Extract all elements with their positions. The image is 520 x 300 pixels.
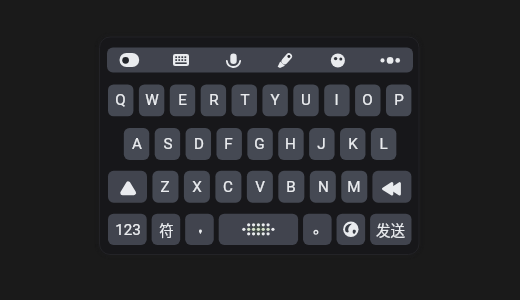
staticText: D — [194, 135, 204, 153]
staticText: G — [254, 135, 265, 153]
button[interactable] — [278, 128, 303, 160]
staticText: N — [318, 178, 329, 196]
button[interactable] — [310, 171, 336, 203]
staticText: V — [255, 178, 265, 196]
staticText: 123 — [115, 221, 141, 239]
staticText: P — [394, 91, 404, 109]
button[interactable] — [108, 214, 147, 245]
button[interactable]: Backspace — [372, 171, 411, 203]
button[interactable] — [216, 128, 241, 160]
button[interactable] — [340, 128, 365, 160]
staticText: H — [285, 135, 296, 153]
staticText: 发送 — [376, 219, 405, 240]
button[interactable] — [215, 171, 241, 203]
button[interactable] — [139, 84, 164, 116]
button[interactable] — [247, 171, 273, 203]
button[interactable] — [201, 84, 226, 116]
staticText: S — [163, 135, 173, 153]
button[interactable]: Space — [219, 214, 298, 245]
staticText: L — [379, 135, 388, 153]
button[interactable] — [355, 84, 380, 116]
button[interactable] — [247, 128, 272, 160]
staticText: X — [192, 178, 202, 196]
staticText: Q — [115, 91, 126, 109]
staticText: T — [240, 91, 250, 109]
button[interactable] — [152, 171, 178, 203]
button[interactable]: Switch language — [337, 214, 366, 245]
button[interactable] — [309, 128, 334, 160]
staticText: J — [317, 135, 326, 153]
staticText: A — [132, 135, 142, 153]
button[interactable]: Voice input — [220, 48, 246, 73]
button[interactable]: Comma — [185, 214, 214, 245]
button[interactable]: Period — [303, 214, 332, 245]
button[interactable] — [155, 128, 180, 160]
button[interactable] — [184, 171, 210, 203]
staticText: B — [286, 178, 296, 196]
button[interactable]: More options — [376, 48, 404, 73]
button[interactable] — [278, 171, 304, 203]
staticText: K — [348, 135, 358, 153]
button[interactable] — [370, 214, 411, 245]
staticText: M — [347, 178, 361, 196]
staticText: C — [223, 178, 233, 196]
button[interactable] — [293, 84, 318, 116]
button[interactable] — [124, 128, 149, 160]
staticText: E — [178, 91, 187, 109]
staticText: W — [145, 91, 159, 109]
button[interactable]: Keyboard layout — [167, 48, 195, 73]
staticText: U — [301, 91, 311, 109]
button[interactable] — [371, 128, 396, 160]
staticText: F — [224, 135, 233, 153]
button[interactable]: Shift — [108, 171, 147, 203]
staticText: Y — [270, 91, 280, 109]
button[interactable] — [324, 84, 349, 116]
button[interactable]: Handwriting — [272, 48, 298, 73]
button[interactable] — [108, 84, 133, 116]
staticText: Z — [160, 178, 170, 196]
button[interactable] — [341, 171, 367, 203]
button[interactable]: Toggle keyboard — [114, 48, 145, 73]
button[interactable]: Emoji — [325, 48, 351, 73]
button[interactable] — [186, 128, 211, 160]
button[interactable] — [386, 84, 411, 116]
staticText: 符 — [159, 219, 174, 240]
staticText: O — [362, 91, 373, 109]
button[interactable] — [232, 84, 257, 116]
button[interactable] — [262, 84, 287, 116]
button[interactable] — [170, 84, 195, 116]
button[interactable] — [152, 214, 181, 245]
staticText: I — [334, 91, 339, 109]
staticText: R — [209, 91, 219, 109]
